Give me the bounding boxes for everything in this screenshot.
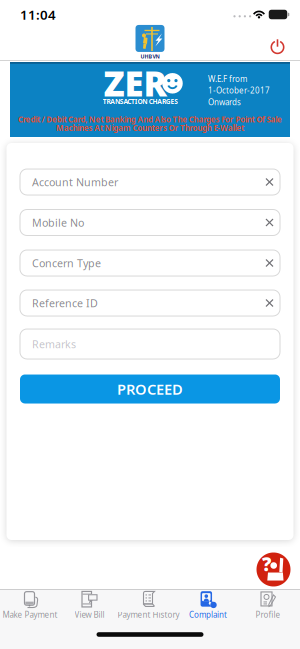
staticText: Profile [255, 609, 280, 620]
button[interactable]: PROCEED [20, 374, 280, 403]
button[interactable]: Make Payment [0, 589, 62, 621]
staticText: Account Number [32, 175, 118, 189]
button[interactable]: Remarks [20, 329, 280, 359]
staticText: ? [262, 552, 271, 576]
button[interactable]: Mobile No [20, 209, 280, 235]
staticText: Mobile No [32, 215, 84, 230]
staticText: PROCEED [117, 379, 183, 399]
button[interactable]: Complaint [176, 589, 240, 621]
staticText: ZER [103, 60, 166, 106]
staticText: Reference ID [32, 296, 98, 310]
button[interactable]: Account Number [20, 169, 280, 195]
staticText: View Bill [74, 609, 104, 620]
staticText: Onwards [208, 97, 241, 107]
staticText: Machines At Nigam Counters Or Through E-… [56, 123, 244, 133]
staticText: Credit / Debit Card, Net Banking And Als… [18, 114, 282, 125]
staticText: Payment History [117, 609, 179, 620]
button[interactable]: Concern Type [20, 250, 280, 276]
staticText: Remarks [32, 337, 76, 351]
staticText: 1-October-2017 [208, 85, 270, 96]
button[interactable]: ? [256, 552, 290, 586]
staticText: TRANSACTION CHARGES [103, 97, 178, 106]
staticText: Concern Type [32, 256, 101, 270]
staticText: Make Payment [2, 609, 57, 620]
button[interactable]: View Bill [57, 589, 121, 621]
button[interactable]: Reference ID [20, 290, 280, 316]
button[interactable]: Payment History [116, 589, 180, 621]
staticText: W.E.F from [208, 74, 247, 84]
button[interactable]: Profile [236, 589, 300, 621]
staticText: 11:04 [20, 6, 56, 23]
staticText: Complaint [189, 609, 227, 620]
staticText: UHBVN [140, 53, 159, 60]
button[interactable] [269, 38, 285, 54]
